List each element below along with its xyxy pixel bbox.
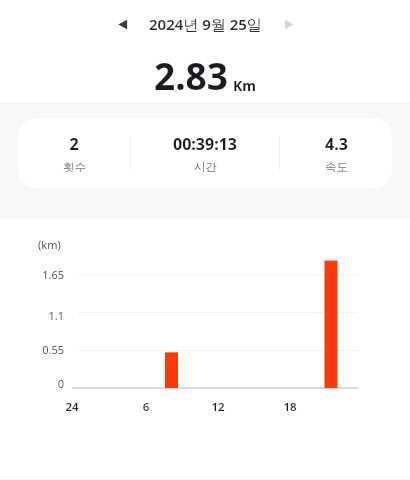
staticText: 2 [69,133,79,155]
button[interactable]: Next day [276,11,302,37]
staticText: Km [233,76,256,95]
button[interactable]: 00:39:13 [131,133,279,174]
button[interactable]: 2 [18,118,392,188]
staticText: 24 [56,399,88,415]
staticText: (km) [38,237,61,252]
staticText: 4.3 [325,133,348,155]
staticText: 횟수 [63,160,86,174]
staticText: 2024년 9월 25일 [149,14,262,34]
button[interactable]: 2 [18,133,130,174]
staticText: 00:39:13 [173,133,237,155]
button[interactable]: 4.3 [280,133,392,174]
staticText: 18 [274,399,306,415]
staticText: 0 [20,376,64,391]
staticText: 속도 [325,160,348,174]
staticText: 1.65 [20,267,64,282]
staticText: 0.55 [20,342,64,357]
button[interactable]: Previous day [109,11,135,37]
staticText: 1.1 [20,308,64,323]
staticText: 6 [130,399,162,415]
staticText: 2.83 [154,50,228,100]
staticText: 12 [202,399,234,415]
staticText: 시간 [194,160,217,174]
